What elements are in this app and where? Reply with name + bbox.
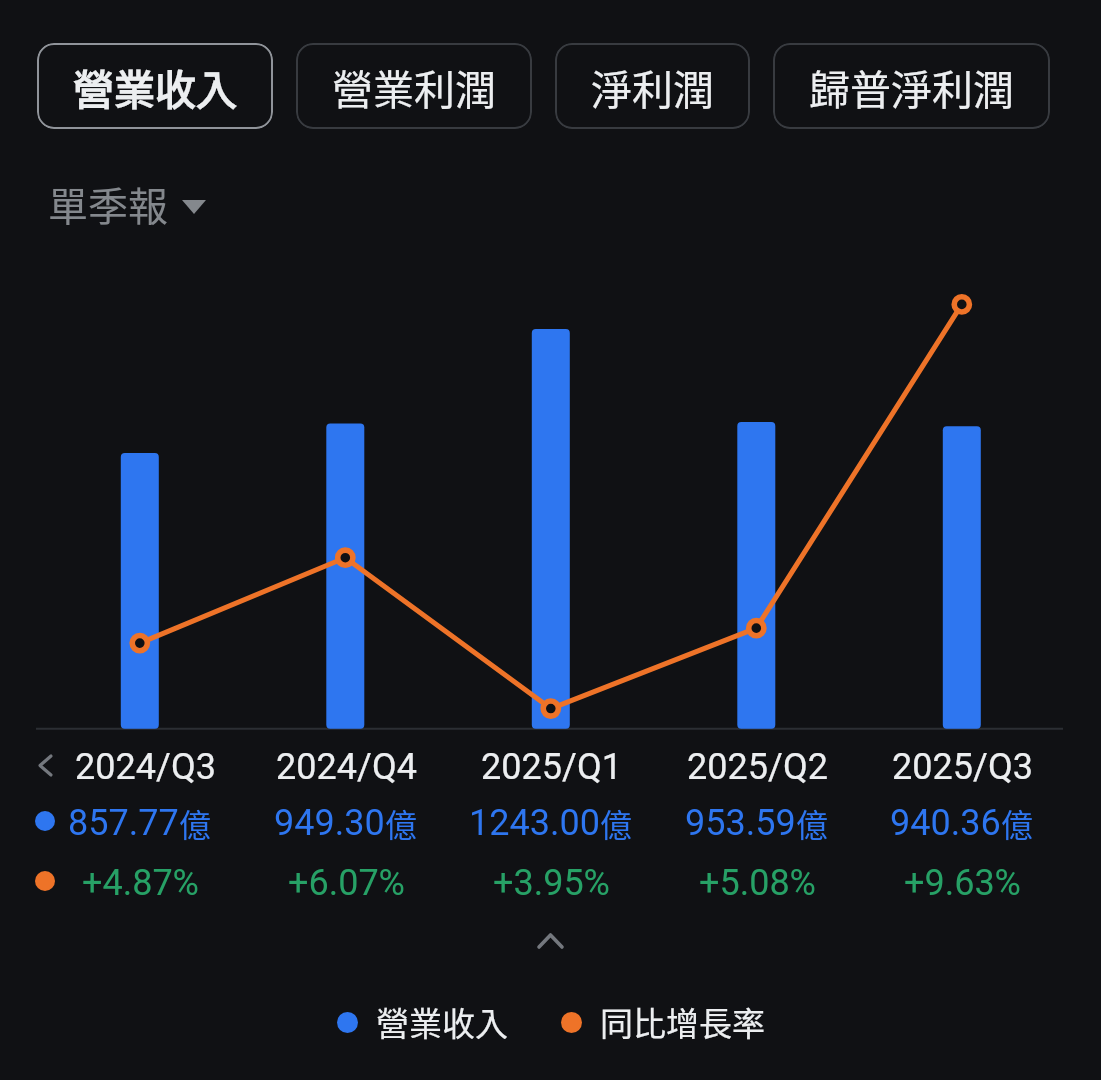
button[interactable]: 2024/Q4 xyxy=(243,744,449,790)
staticText: 營業收入 xyxy=(376,998,508,1046)
staticText: 2024/Q3 xyxy=(75,746,216,788)
staticText: 940.36 xyxy=(890,802,1001,844)
staticText: 億 xyxy=(796,800,829,846)
staticText: 營業利潤 xyxy=(332,57,496,116)
staticText: 億 xyxy=(179,800,212,846)
staticText: 2025/Q2 xyxy=(687,746,828,788)
button[interactable]: 2025/Q1 xyxy=(448,744,654,790)
staticText: 949.30 xyxy=(274,802,385,844)
staticText: 857.77 xyxy=(68,802,179,844)
staticText: 同比增長率 xyxy=(600,998,765,1046)
button[interactable]: 2024/Q3 xyxy=(42,744,248,790)
staticText: 淨利潤 xyxy=(591,57,714,116)
staticText: 單季報 xyxy=(48,175,168,233)
button[interactable]: 歸普淨利潤 xyxy=(773,43,1050,129)
button[interactable]: 淨利潤 xyxy=(555,43,750,129)
button[interactable]: 同比增長率 xyxy=(557,994,769,1050)
staticText: 2025/Q1 xyxy=(481,746,622,788)
staticText: 億 xyxy=(600,800,633,846)
button[interactable]: 單季報 xyxy=(40,169,214,239)
button[interactable]: 2025/Q2 xyxy=(654,744,860,790)
staticText: +6.07% xyxy=(288,862,405,904)
staticText: 億 xyxy=(1001,800,1034,846)
staticText: 2025/Q3 xyxy=(892,746,1033,788)
staticText: +9.63% xyxy=(904,862,1021,904)
staticText: 歸普淨利潤 xyxy=(809,57,1014,116)
button[interactable]: 營業利潤 xyxy=(296,43,532,129)
staticText: +3.95% xyxy=(493,862,610,904)
button[interactable]: 營業收入 xyxy=(37,43,273,129)
button[interactable]: 2025/Q3 xyxy=(859,744,1065,790)
button[interactable]: Previous period xyxy=(25,742,65,788)
button[interactable]: 營業收入 xyxy=(333,994,512,1050)
staticText: +5.08% xyxy=(699,862,816,904)
staticText: 2024/Q4 xyxy=(276,746,417,788)
staticText: 營業收入 xyxy=(73,57,237,116)
button[interactable]: Collapse xyxy=(510,913,590,969)
staticText: 1243.00 xyxy=(469,802,600,844)
staticText: 億 xyxy=(385,800,418,846)
staticText: +4.87% xyxy=(82,862,199,904)
staticText: 953.59 xyxy=(685,802,796,844)
